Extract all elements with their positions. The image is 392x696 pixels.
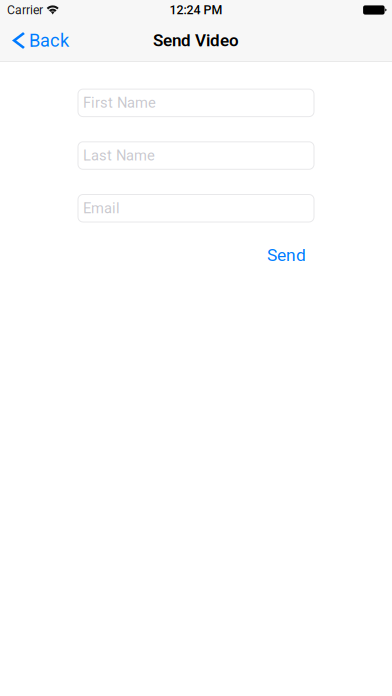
staticText: Last Name xyxy=(83,147,155,164)
staticText: Send Video xyxy=(153,30,239,50)
staticText: First Name xyxy=(83,94,156,111)
button[interactable]: Send xyxy=(257,242,314,268)
staticText: 12:24 PM xyxy=(169,3,222,17)
button[interactable]: Back xyxy=(0,20,79,61)
staticText: Send xyxy=(267,245,306,265)
staticText: Email xyxy=(83,200,120,217)
staticText: Back xyxy=(29,30,69,51)
staticText: Carrier xyxy=(7,3,43,17)
